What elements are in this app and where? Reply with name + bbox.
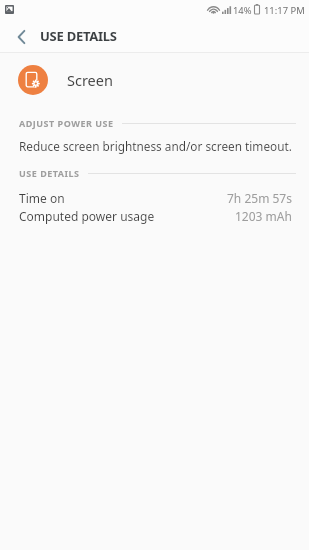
staticText: USE DETAILS <box>19 167 80 179</box>
button[interactable]: Screen <box>0 56 309 103</box>
staticText: ADJUST POWER USE <box>19 117 114 129</box>
staticText: 1203 mAh <box>235 208 292 224</box>
staticText: Reduce screen brightness and/or screen t… <box>19 138 292 154</box>
staticText: 11:17 PM <box>264 4 305 17</box>
staticText: 14% <box>233 4 252 17</box>
staticText: Time on <box>19 190 65 206</box>
button[interactable]: Navigate up <box>9 24 34 49</box>
button[interactable]: Computed power usage <box>0 207 309 225</box>
staticText: 7h 25m 57s <box>227 190 292 206</box>
button[interactable]: Time on <box>0 189 309 207</box>
staticText: USE DETAILS <box>40 27 117 45</box>
staticText: Computed power usage <box>19 208 155 224</box>
staticText: Screen <box>67 70 113 90</box>
